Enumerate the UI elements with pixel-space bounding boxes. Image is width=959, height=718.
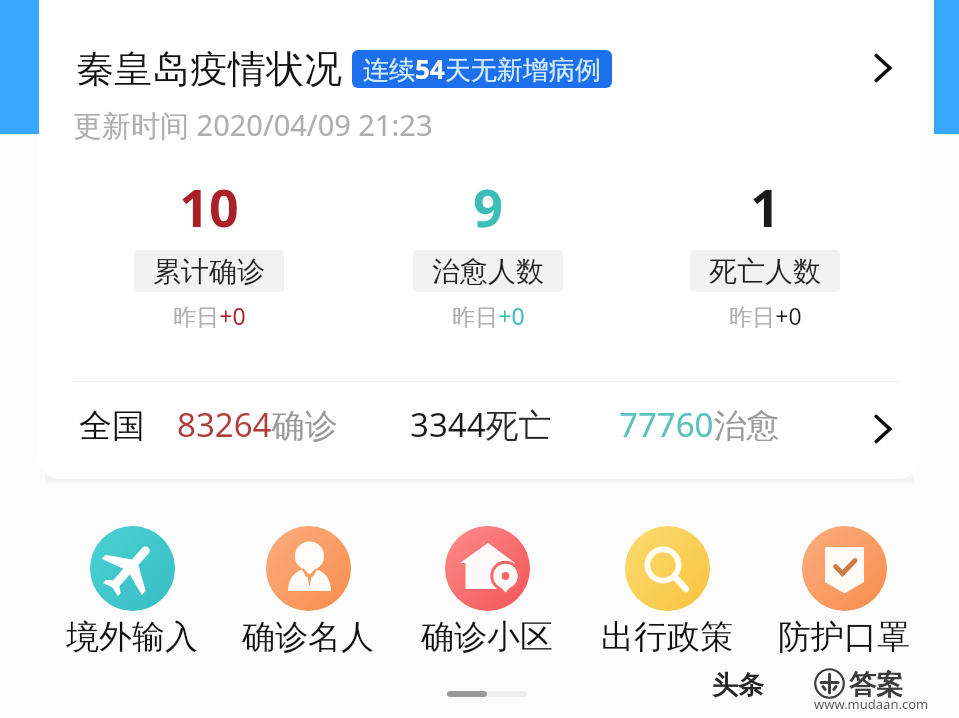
staticText: 10 bbox=[179, 171, 239, 242]
staticText: 9 bbox=[473, 171, 503, 242]
staticText: 出行政策 bbox=[601, 616, 733, 658]
staticText: 昨日+0 bbox=[173, 300, 246, 331]
staticText: 昨日+0 bbox=[452, 300, 525, 331]
staticText: 确诊小区 bbox=[421, 616, 553, 658]
staticText: 治愈人数 bbox=[432, 254, 544, 289]
staticText: 死亡人数 bbox=[709, 254, 821, 289]
staticText: 境外输入 bbox=[66, 616, 198, 658]
button[interactable]: 境外输入 bbox=[22, 526, 242, 658]
button[interactable]: National detail bbox=[861, 407, 905, 451]
staticText: 头条 bbox=[712, 669, 764, 702]
button[interactable]: Open detail bbox=[861, 46, 905, 90]
staticText: 83264确诊 bbox=[177, 402, 338, 447]
staticText: 连续54天无新增病例 bbox=[363, 51, 601, 87]
staticText: 3344死亡 bbox=[410, 402, 552, 447]
staticText: 1 bbox=[750, 171, 780, 242]
staticText: 77760治愈 bbox=[619, 402, 780, 447]
button[interactable]: 确诊名人 bbox=[198, 526, 418, 658]
staticText: www.mudaan.com bbox=[814, 695, 929, 713]
staticText: 答案 bbox=[849, 668, 903, 702]
button[interactable]: 连续54天无新增病例 bbox=[352, 50, 612, 88]
staticText: 累计确诊 bbox=[153, 254, 265, 289]
staticText: 确诊名人 bbox=[242, 616, 374, 658]
staticText: 昨日+0 bbox=[729, 300, 802, 331]
staticText: 更新时间 2020/04/09 21:23 bbox=[73, 105, 433, 145]
staticText: 秦皇岛疫情状况 bbox=[76, 45, 342, 93]
button[interactable]: 确诊小区 bbox=[377, 526, 597, 658]
staticText: 防护口罩 bbox=[778, 616, 910, 658]
staticText: 全国 bbox=[79, 405, 145, 447]
button[interactable]: 防护口罩 bbox=[734, 526, 954, 658]
button[interactable]: 出行政策 bbox=[557, 526, 777, 658]
